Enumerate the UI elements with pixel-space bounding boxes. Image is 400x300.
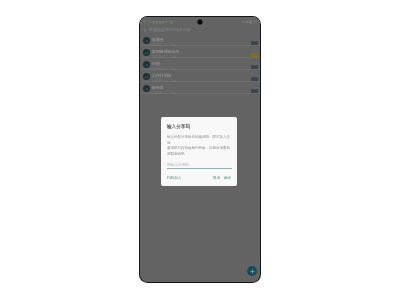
button[interactable]: More — [251, 65, 258, 69]
button[interactable]: 常用电话簿记录 — [140, 46, 260, 58]
staticText: 搜索您想要的内容记录 — [149, 27, 191, 32]
staticText: 确定 — [224, 176, 232, 181]
staticText: 日程 — [152, 61, 160, 66]
button[interactable]: Add — [247, 266, 257, 276]
staticText: 取消 — [213, 176, 221, 181]
staticText: 2024-06-12 · 12项 — [152, 79, 176, 83]
staticText: 备份库 — [152, 85, 164, 90]
button[interactable]: 确定 — [224, 176, 232, 181]
button[interactable]: 日程 — [140, 58, 260, 70]
staticText: 请输入分享码 — [167, 163, 189, 168]
button[interactable]: 备份库 — [140, 82, 260, 94]
staticText: 邀请码只在有效期内有效，过期后请重新获取新的码 — [167, 146, 232, 157]
staticText: 2024-06-12 · 12项 — [152, 91, 176, 95]
staticText: 收藏夹 — [152, 37, 164, 42]
staticText: 输入分享码 — [167, 124, 190, 130]
button[interactable]: 工作计划表 — [140, 70, 260, 82]
button[interactable]: More — [251, 41, 258, 45]
button[interactable]: 扫码加入 — [167, 176, 182, 181]
staticText: 输入好友分享给你的邀请码，即可加入空间 — [167, 135, 232, 146]
button[interactable]: 取消 — [213, 176, 221, 181]
staticText: 10:24 ●●●●✉♪■ — [142, 19, 174, 24]
button[interactable]: More — [251, 77, 258, 81]
staticText: 2024-06-12 · 12项 — [152, 55, 176, 59]
staticText: 工作计划表 — [152, 73, 172, 78]
staticText: 扫码加入 — [167, 176, 182, 181]
staticText: ▾▴▣■ 85 — [242, 19, 258, 24]
button[interactable]: 收藏夹 — [140, 34, 260, 46]
button[interactable]: More — [251, 89, 258, 93]
staticText: 2024-06-12 · 12项 — [152, 43, 176, 47]
staticText: 2024-06-12 · 12项 — [152, 67, 176, 71]
button[interactable]: More — [251, 53, 258, 57]
staticText: 常用电话簿记录 — [152, 49, 180, 54]
